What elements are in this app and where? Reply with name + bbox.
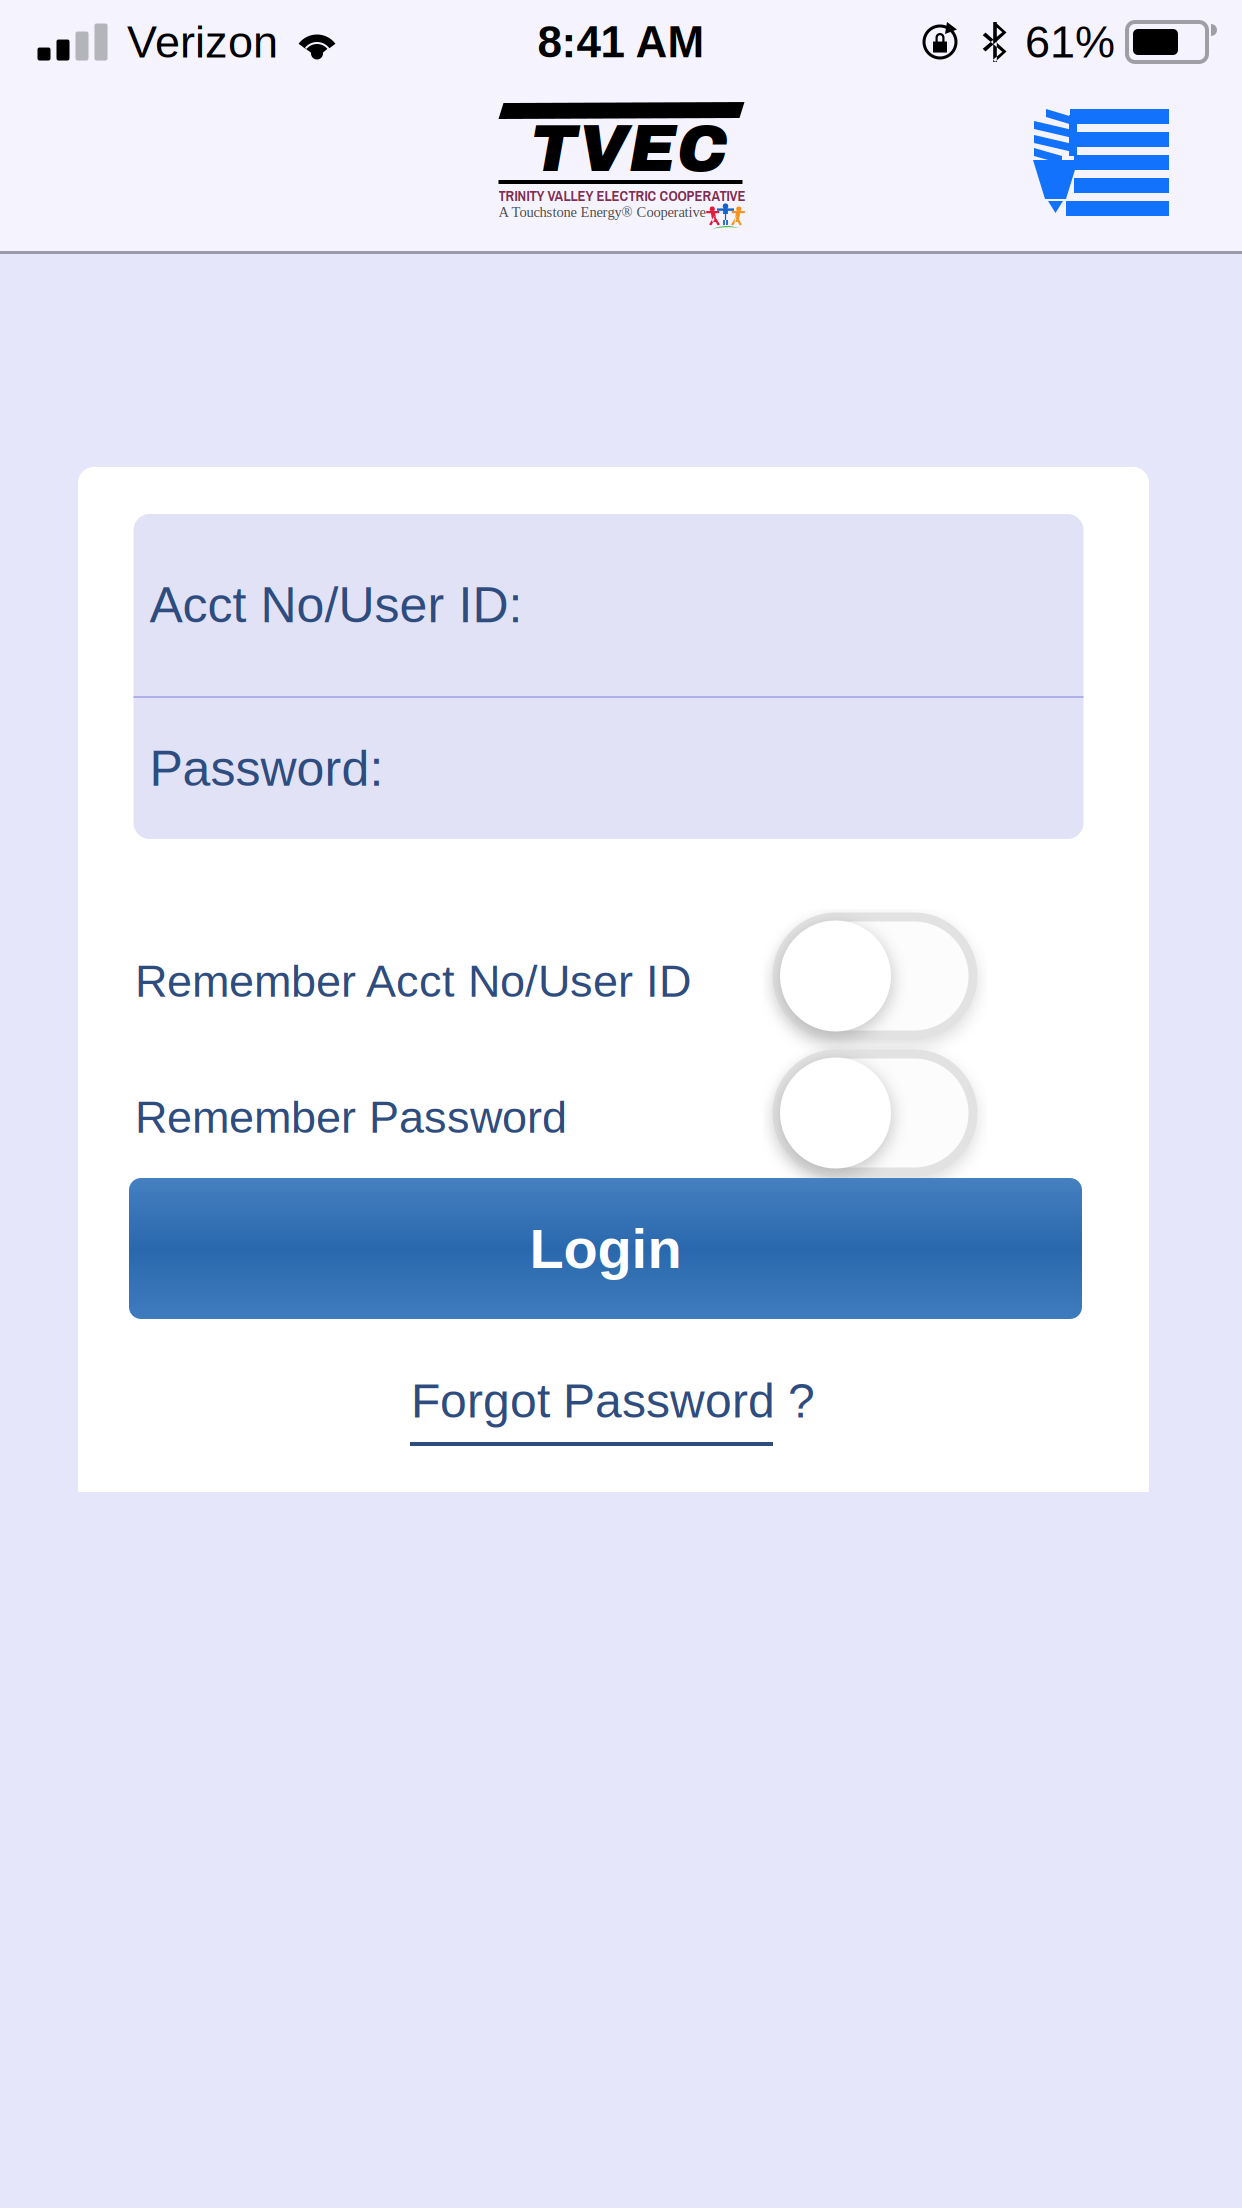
staticText: Remember Acct No/User ID <box>135 956 691 1006</box>
staticText: 61% <box>1025 17 1115 67</box>
button[interactable]: Remember Password <box>777 1054 973 1172</box>
staticText: Login <box>529 1217 681 1280</box>
staticText: Acct No/User ID: <box>149 577 522 633</box>
button[interactable]: Menu <box>1032 109 1169 215</box>
button[interactable]: Remember Acct No/User ID <box>777 917 973 1035</box>
button[interactable]: Forgot Password ? <box>78 1319 1149 1492</box>
staticText: Verizon <box>127 17 278 67</box>
staticText: Forgot Password ? <box>411 1374 815 1428</box>
staticText: Password: <box>149 741 383 796</box>
staticText: TRINITY VALLEY ELECTRIC COOPERATIVE <box>498 186 745 205</box>
staticText: 8:41 AM <box>537 17 704 67</box>
button[interactable]: Login <box>129 1178 1082 1319</box>
staticText: A Touchstone Energy® Cooperative <box>498 204 705 220</box>
staticText: TVEC <box>529 113 727 185</box>
staticText: Remember Password <box>135 1092 567 1142</box>
